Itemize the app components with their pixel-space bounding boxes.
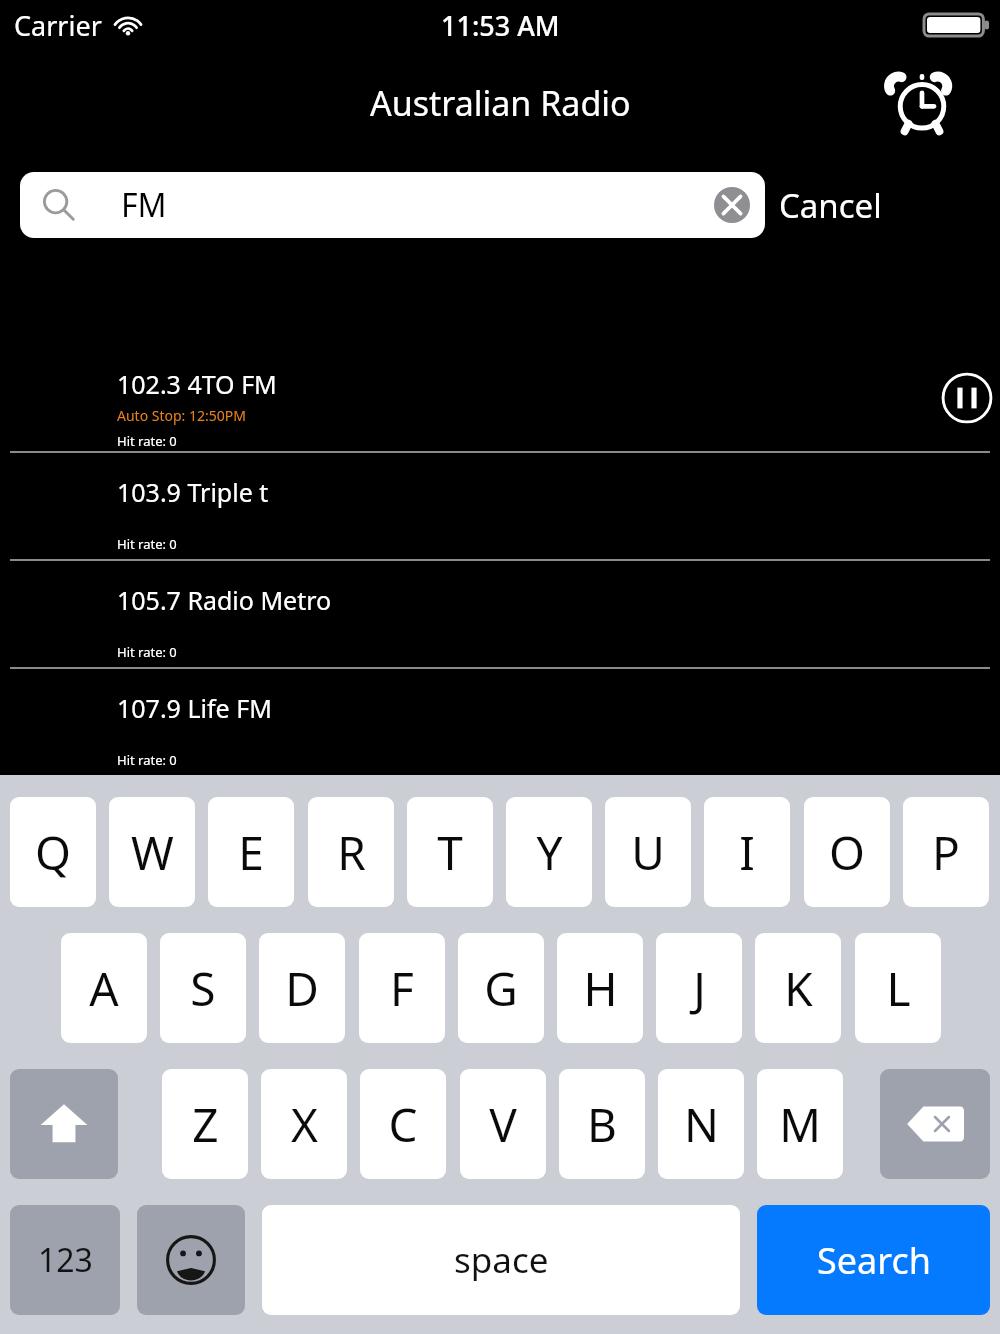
staticText: Cancel — [779, 183, 882, 228]
button[interactable]: Emoji — [137, 1205, 245, 1315]
button[interactable]: M — [757, 1069, 843, 1179]
staticText: Hit rate: 0 — [117, 535, 177, 553]
staticText: Hit rate: 0 — [117, 751, 177, 769]
staticText: space — [454, 1236, 549, 1284]
button[interactable]: Alarm — [889, 70, 955, 136]
button[interactable]: R — [308, 797, 394, 907]
button[interactable]: C — [360, 1069, 446, 1179]
button[interactable]: Backspace — [880, 1069, 990, 1179]
button[interactable]: B — [559, 1069, 645, 1179]
staticText: M — [779, 1093, 821, 1156]
button[interactable]: Clear text — [707, 180, 757, 230]
staticText: N — [684, 1093, 719, 1156]
staticText: O — [829, 821, 865, 884]
button[interactable]: D — [259, 933, 345, 1043]
button[interactable]: E — [208, 797, 294, 907]
staticText: B — [587, 1093, 617, 1156]
staticText: Hit rate: 0 — [117, 643, 177, 661]
staticText: D — [285, 957, 319, 1020]
staticText: FM — [121, 183, 707, 227]
button[interactable]: F — [359, 933, 445, 1043]
staticText: 103.9 Triple t — [117, 475, 269, 509]
staticText: Hit rate: 0 — [117, 432, 177, 450]
button[interactable]: I — [704, 797, 790, 907]
button[interactable]: H — [557, 933, 643, 1043]
button[interactable]: 102.3 4TO FM — [0, 345, 1000, 451]
button[interactable]: 107.9 Life FM — [0, 669, 1000, 775]
button[interactable]: Pause — [939, 370, 995, 426]
button[interactable]: space — [262, 1205, 740, 1315]
button[interactable]: W — [109, 797, 195, 907]
staticText: Carrier — [14, 7, 102, 44]
button[interactable]: Z — [162, 1069, 248, 1179]
staticText: C — [388, 1093, 418, 1156]
button[interactable]: S — [160, 933, 246, 1043]
staticText: Auto Stop: 12:50PM — [117, 406, 246, 425]
staticText: T — [437, 821, 463, 884]
staticText: 123 — [38, 1238, 93, 1282]
button[interactable]: Shift — [10, 1069, 118, 1179]
staticText: Q — [35, 821, 71, 884]
button[interactable]: Cancel — [779, 172, 882, 238]
button[interactable]: 123 — [10, 1205, 120, 1315]
staticText: K — [784, 957, 813, 1020]
button[interactable]: A — [61, 933, 147, 1043]
button[interactable]: 105.7 Radio Metro — [0, 561, 1000, 667]
staticText: 11:53 AM — [441, 7, 560, 44]
staticText: 107.9 Life FM — [117, 691, 272, 725]
button[interactable]: Search — [757, 1205, 990, 1315]
button[interactable]: Q — [10, 797, 96, 907]
staticText: A — [89, 957, 119, 1020]
staticText: W — [131, 821, 174, 884]
staticText: U — [631, 821, 665, 884]
staticText: V — [489, 1093, 517, 1156]
staticText: R — [337, 821, 366, 884]
staticText: P — [932, 821, 960, 884]
staticText: I — [739, 821, 755, 884]
button[interactable]: K — [755, 933, 841, 1043]
staticText: S — [190, 957, 216, 1020]
staticText: F — [390, 957, 414, 1020]
button[interactable]: P — [903, 797, 989, 907]
staticText: 102.3 4TO FM — [117, 367, 277, 401]
staticText: J — [693, 957, 706, 1020]
staticText: Search — [817, 1236, 931, 1285]
staticText: G — [484, 957, 518, 1020]
button[interactable]: U — [605, 797, 691, 907]
button[interactable]: G — [458, 933, 544, 1043]
button[interactable]: Y — [506, 797, 592, 907]
button[interactable]: J — [656, 933, 742, 1043]
button[interactable]: 103.9 Triple t — [0, 453, 1000, 559]
staticText: Y — [536, 821, 563, 884]
staticText: H — [583, 957, 618, 1020]
button[interactable]: O — [804, 797, 890, 907]
staticText: X — [291, 1093, 318, 1156]
staticText: Z — [192, 1093, 219, 1156]
staticText: 105.7 Radio Metro — [117, 583, 332, 617]
staticText: E — [238, 821, 264, 884]
button[interactable]: V — [460, 1069, 546, 1179]
button[interactable]: L — [855, 933, 941, 1043]
staticText: L — [886, 957, 911, 1020]
button[interactable]: X — [261, 1069, 347, 1179]
staticText: Australian Radio — [370, 80, 631, 126]
button[interactable]: FM — [20, 172, 765, 238]
button[interactable]: T — [407, 797, 493, 907]
button[interactable]: N — [658, 1069, 744, 1179]
